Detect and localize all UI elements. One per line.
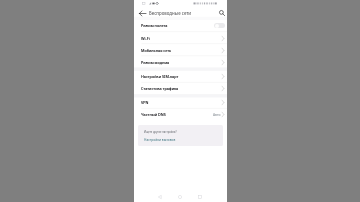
button[interactable]: Назад	[136, 7, 148, 19]
button[interactable]: Мобильная сеть	[134, 44, 227, 56]
staticText: Режим полета	[141, 23, 168, 28]
staticText: Настройки SIM-карт	[141, 74, 179, 79]
staticText: Режим полета	[141, 23, 168, 28]
staticText: Статистика трафика	[141, 86, 179, 91]
button[interactable]: Частный DNS	[134, 108, 227, 120]
staticText: Wi-Fi	[141, 36, 150, 41]
button[interactable]: Режим полета	[134, 19, 227, 31]
staticText: Мобильная сеть	[141, 48, 172, 53]
staticText: Авто	[213, 112, 221, 116]
staticText: Частный DNS	[141, 112, 166, 117]
button[interactable]: Режим модема	[134, 56, 227, 68]
staticText: Ищете другие настройки?	[144, 130, 177, 134]
button[interactable]: VPN	[134, 96, 227, 108]
button[interactable]: Недавние приложения	[194, 191, 206, 202]
button[interactable]: Статистика трафика	[134, 82, 227, 94]
staticText: Режим модема	[141, 60, 170, 65]
staticText: Мобильная сеть	[141, 48, 172, 53]
staticText: Wi-Fi	[141, 36, 150, 41]
button[interactable]: Ищете другие настройки?	[138, 125, 223, 146]
staticText: Беспроводные сети	[149, 10, 192, 16]
staticText: VPN	[141, 100, 149, 105]
button[interactable]: Настройки SIM-карт	[134, 70, 227, 82]
button[interactable]: Главный экран	[174, 191, 186, 202]
button[interactable]: Поиск	[216, 7, 228, 19]
staticText: Частный DNS	[141, 112, 166, 117]
button[interactable]: Назад	[154, 191, 166, 202]
staticText: Настройки вызовов	[144, 138, 176, 142]
staticText: Настройки SIM-карт	[141, 74, 179, 79]
staticText: Режим модема	[141, 60, 170, 65]
staticText: Статистика трафика	[141, 86, 179, 91]
staticText: VPN	[141, 100, 149, 105]
button[interactable]: Wi-Fi	[134, 32, 227, 44]
